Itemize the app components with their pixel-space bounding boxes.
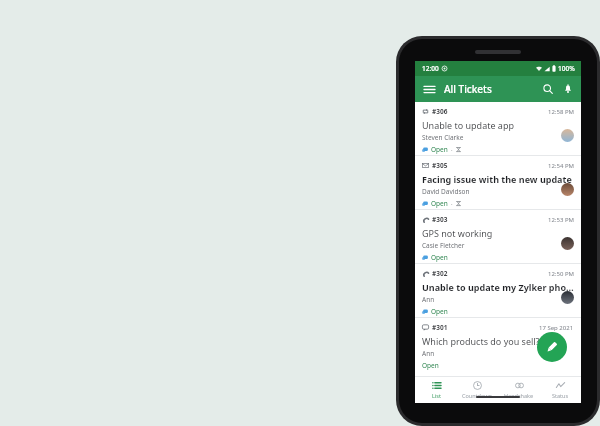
staticText: Handshake [504,392,534,399]
staticText: · [451,146,453,154]
staticText: #306 [432,107,448,116]
staticText: Ann [422,295,435,304]
staticText: Casie Fletcher [422,241,465,250]
staticText: Open [431,145,448,154]
staticText: Steven Clarke [422,133,464,142]
staticText: #301 [432,323,448,332]
button[interactable]: #306 [415,102,581,155]
staticText: List [432,392,441,399]
staticText: Unable to update my Zylker phone [422,281,574,293]
staticText: Unable to update app [422,119,514,131]
button[interactable]: #303 [415,210,581,263]
staticText: 100% [558,64,575,73]
staticText: All Tickets [444,82,492,96]
staticText: Ann [422,349,435,358]
staticText: #305 [432,161,448,170]
button[interactable]: #305 [415,156,581,209]
staticText: Facing issue with the new update [422,173,572,185]
staticText: 12:53 PM [548,216,574,224]
staticText: · [451,200,453,208]
staticText: Open [431,253,448,262]
staticText: Open [431,199,448,208]
staticText: Status [552,392,569,399]
button[interactable]: #301 [415,318,581,371]
staticText: 12:58 PM [548,108,574,116]
staticText: Open [431,307,448,316]
staticText: GPS not working [422,227,493,239]
staticText: Countdown [462,392,492,399]
staticText: David Davidson [422,187,470,196]
staticText: 17 Sep 2021 [539,324,574,332]
staticText: #303 [432,215,448,224]
staticText: 12:00 [422,64,439,73]
button[interactable]: Open navigation menu [419,79,439,99]
button[interactable]: Handshake [499,377,539,403]
button[interactable]: Compose new ticket [537,332,567,362]
button[interactable]: Countdown [457,377,497,403]
button[interactable]: #302 [415,264,581,317]
staticText: Open [422,361,439,370]
button[interactable]: List [416,377,456,403]
staticText: Which products do you sell? [422,335,540,347]
button[interactable]: Status [540,377,580,403]
staticText: 12:54 PM [548,162,574,170]
staticText: 12:50 PM [548,270,574,278]
staticText: #302 [432,269,448,278]
button[interactable]: Search [538,79,558,99]
button[interactable]: Notifications [558,79,578,99]
